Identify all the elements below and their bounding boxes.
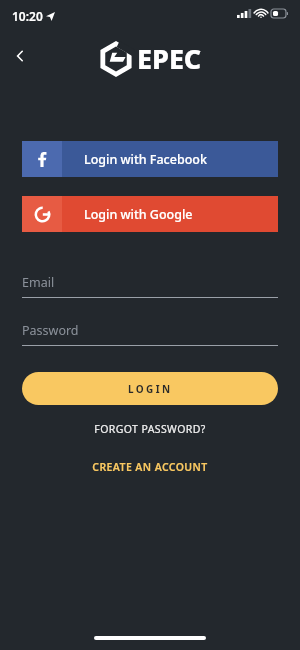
- button[interactable]: Login with Google: [22, 196, 278, 232]
- staticText: Login with Google: [84, 206, 193, 223]
- staticText: EPEC: [137, 40, 202, 77]
- button[interactable]: FORGOT PASSWORD?: [22, 422, 278, 436]
- button[interactable]: Email: [22, 271, 278, 298]
- staticText: CREATE AN ACCOUNT: [92, 460, 208, 474]
- staticText: LOGIN: [128, 382, 173, 396]
- button[interactable]: Password: [22, 319, 278, 346]
- staticText: Login with Facebook: [84, 151, 207, 168]
- staticText: Password: [22, 322, 79, 339]
- staticText: 10:20: [12, 8, 43, 24]
- staticText: FORGOT PASSWORD?: [94, 422, 206, 436]
- button[interactable]: Back: [4, 40, 36, 72]
- button[interactable]: CREATE AN ACCOUNT: [22, 460, 278, 474]
- staticText: Email: [22, 274, 55, 291]
- button[interactable]: LOGIN: [22, 372, 278, 405]
- button[interactable]: Login with Facebook: [22, 141, 278, 177]
